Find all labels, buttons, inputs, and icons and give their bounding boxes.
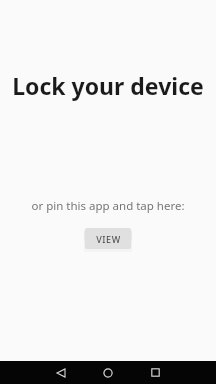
button[interactable]: Recent apps xyxy=(141,361,169,384)
staticText: VIEW xyxy=(96,233,121,245)
staticText: or pin this app and tap here: xyxy=(0,198,216,214)
button[interactable]: Back xyxy=(47,361,75,384)
staticText: Lock your device xyxy=(0,70,216,101)
button[interactable]: VIEW xyxy=(85,228,131,249)
button[interactable]: Home xyxy=(94,361,122,384)
